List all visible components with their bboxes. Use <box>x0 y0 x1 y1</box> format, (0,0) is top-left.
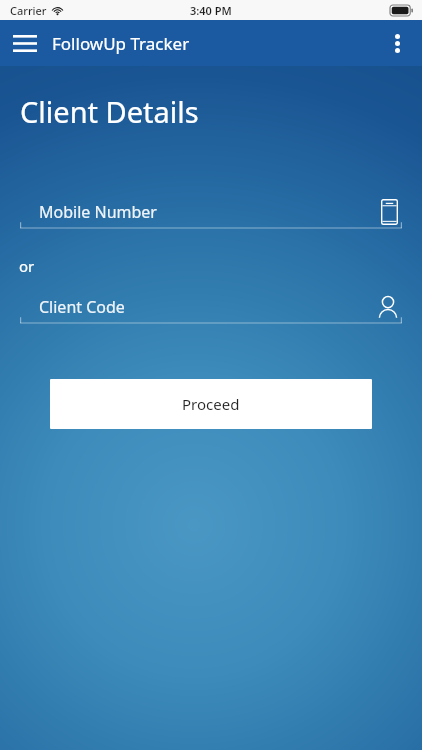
staticText: FollowUp Tracker <box>52 32 190 55</box>
button[interactable]: Proceed <box>50 379 372 429</box>
button[interactable]: Client Code <box>20 292 402 329</box>
staticText: Client Code <box>39 296 125 318</box>
other: Phone number <box>381 199 398 225</box>
staticText: Carrier <box>10 3 47 18</box>
staticText: Proceed <box>182 394 240 414</box>
button[interactable]: Open navigation menu <box>4 22 46 64</box>
staticText: Client Details <box>20 92 199 131</box>
staticText: or <box>19 256 35 276</box>
staticText: 3:40 PM <box>190 3 232 18</box>
other: Client code <box>378 295 398 319</box>
button[interactable]: More options <box>376 22 418 64</box>
button[interactable]: Mobile Number <box>20 197 402 234</box>
staticText: Mobile Number <box>39 201 157 223</box>
